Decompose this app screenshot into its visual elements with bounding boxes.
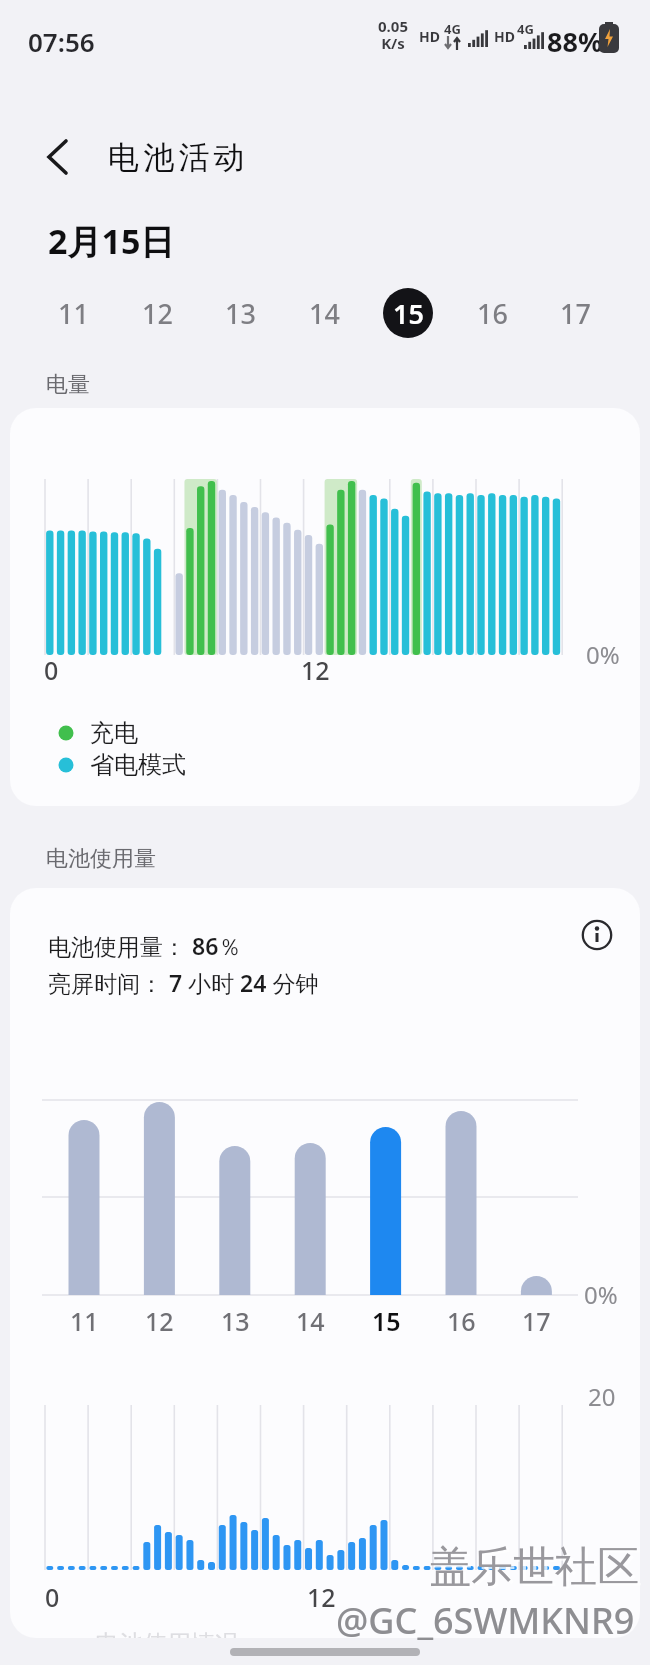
staticText: 0.05 K/s (368, 16, 418, 54)
staticText: 12 (142, 295, 173, 332)
staticText: 电池活动 (108, 138, 249, 177)
staticText: 20 (588, 1380, 616, 1413)
staticText: 16 (477, 295, 508, 332)
button[interactable]: 14 (299, 288, 349, 338)
staticText: 11 (70, 1304, 99, 1334)
button[interactable]: 14 (285, 1304, 335, 1334)
staticText: HD (419, 27, 440, 46)
staticText: 盖乐世社区 (429, 1541, 639, 1594)
staticText: 15 (372, 1304, 401, 1334)
staticText: 充电 (90, 718, 138, 748)
staticText: 0 (45, 1580, 60, 1614)
staticText: 17 (522, 1304, 551, 1334)
button[interactable] (46, 139, 70, 175)
staticText: 07:56 (28, 24, 95, 59)
button[interactable]: 16 (436, 1304, 486, 1334)
staticText: 12 (307, 1580, 336, 1614)
staticText: 13 (225, 295, 256, 332)
button[interactable]: 15 (361, 1304, 411, 1334)
staticText: 4G (517, 20, 534, 38)
button[interactable]: 11 (59, 1304, 109, 1334)
staticText: 13 (221, 1304, 250, 1334)
staticText: 12 (145, 1304, 174, 1334)
button[interactable]: 13 (210, 1304, 260, 1334)
staticText: 省电模式 (90, 750, 186, 780)
staticText: 电池使用情况 (95, 1629, 239, 1638)
button[interactable]: 15 (383, 288, 433, 338)
staticText: 0 (44, 653, 59, 687)
staticText: 12 (301, 653, 330, 687)
staticText: 14 (296, 1304, 325, 1334)
button[interactable] (581, 919, 613, 951)
staticText: 4G (444, 20, 461, 38)
button[interactable]: 16 (467, 288, 517, 338)
staticText: 电池使用量 (46, 845, 156, 873)
staticText: 盖乐世社区 (432, 1543, 642, 1596)
button[interactable]: 17 (511, 1304, 561, 1334)
button[interactable]: 17 (550, 288, 600, 338)
staticText: 16 (447, 1304, 476, 1334)
button[interactable]: 13 (215, 288, 265, 338)
staticText: 14 (309, 295, 340, 332)
staticText: 0% (584, 1278, 618, 1311)
button[interactable]: 12 (132, 288, 182, 338)
staticText: 亮屏时间： 7 小时 24 分钟 (48, 967, 319, 998)
staticText: 15 (393, 295, 424, 332)
staticText: 电池使用量： 86％ (48, 930, 242, 961)
button[interactable]: 11 (48, 288, 98, 338)
button[interactable]: 12 (134, 1304, 184, 1334)
staticText: 88% (547, 23, 603, 60)
staticText: 2月15日 (48, 218, 175, 264)
staticText: 电量 (46, 371, 90, 399)
staticText: @GC_6SWMKNR9 (336, 1596, 635, 1645)
staticText: 11 (58, 295, 89, 332)
staticText: 0% (586, 638, 620, 671)
staticText: 17 (560, 295, 591, 332)
staticText: HD (494, 27, 515, 46)
